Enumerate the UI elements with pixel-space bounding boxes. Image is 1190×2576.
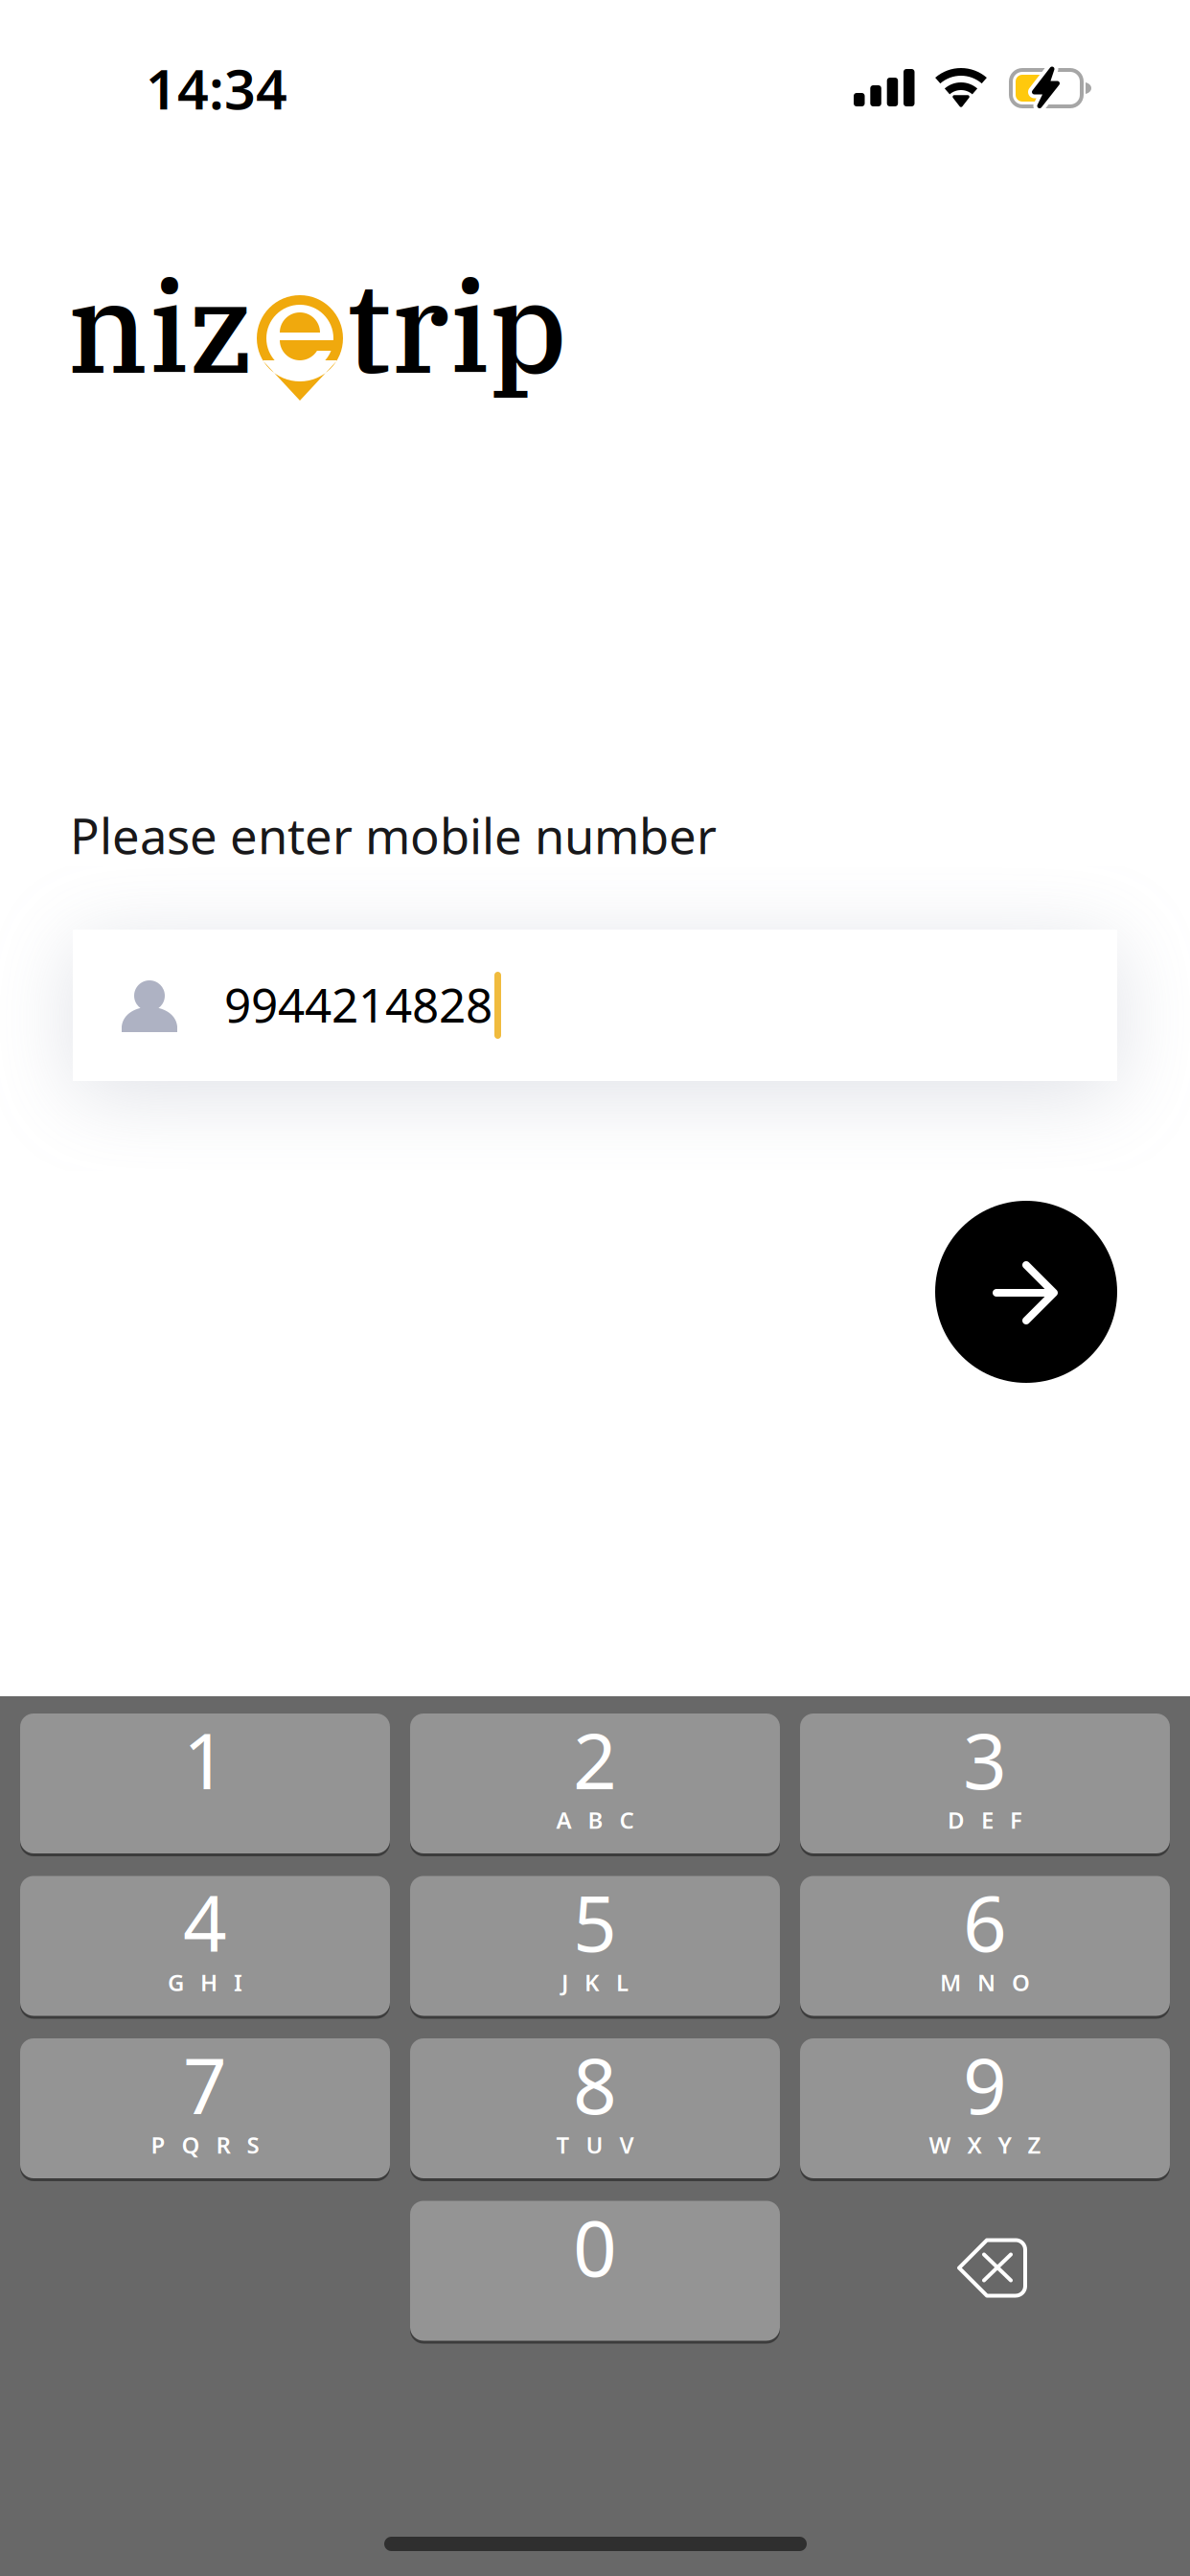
button[interactable]: Continue [935,1201,1117,1383]
button[interactable]: 3 [800,1713,1170,1853]
staticText: 6 [963,1871,1007,1973]
staticText: trip [346,244,567,407]
button[interactable]: 8 [410,2038,780,2178]
staticText: TUV [556,2130,634,2160]
button[interactable]: 5 [410,1876,780,2016]
staticText: 3 [963,1709,1007,1810]
staticText: JKL [561,1967,629,1998]
button[interactable]: 7 [20,2038,390,2178]
staticText: 8 [573,2033,617,2135]
staticText: WXYZ [929,2130,1041,2160]
staticText: 7 [183,2033,227,2135]
button[interactable]: 9 [800,2038,1170,2178]
button[interactable]: 4 [20,1876,390,2016]
staticText: 4 [183,1871,227,1973]
staticText: 14:34 [146,52,287,125]
staticText: 9944214828 [224,973,492,1035]
staticText: 5 [573,1871,617,1973]
staticText: PQRS [151,2130,259,2160]
staticText: 2 [573,1709,617,1810]
staticText: 9 [963,2033,1007,2135]
staticText: Please enter mobile number [70,803,717,868]
button[interactable]: Mobile number [73,930,1117,1081]
staticText: GHI [168,1967,242,1998]
staticText: 1 [183,1709,227,1810]
staticText: MNO [940,1967,1030,1998]
button[interactable]: 1 [20,1713,390,1853]
staticText: niz [67,244,253,407]
button[interactable]: 6 [800,1876,1170,2016]
staticText: 0 [573,2196,617,2298]
button[interactable]: 0 [410,2201,780,2341]
button[interactable]: Delete [800,2201,1170,2341]
staticText: DEF [948,1805,1022,1835]
staticText: ABC [556,1805,634,1835]
button[interactable]: 2 [410,1713,780,1853]
